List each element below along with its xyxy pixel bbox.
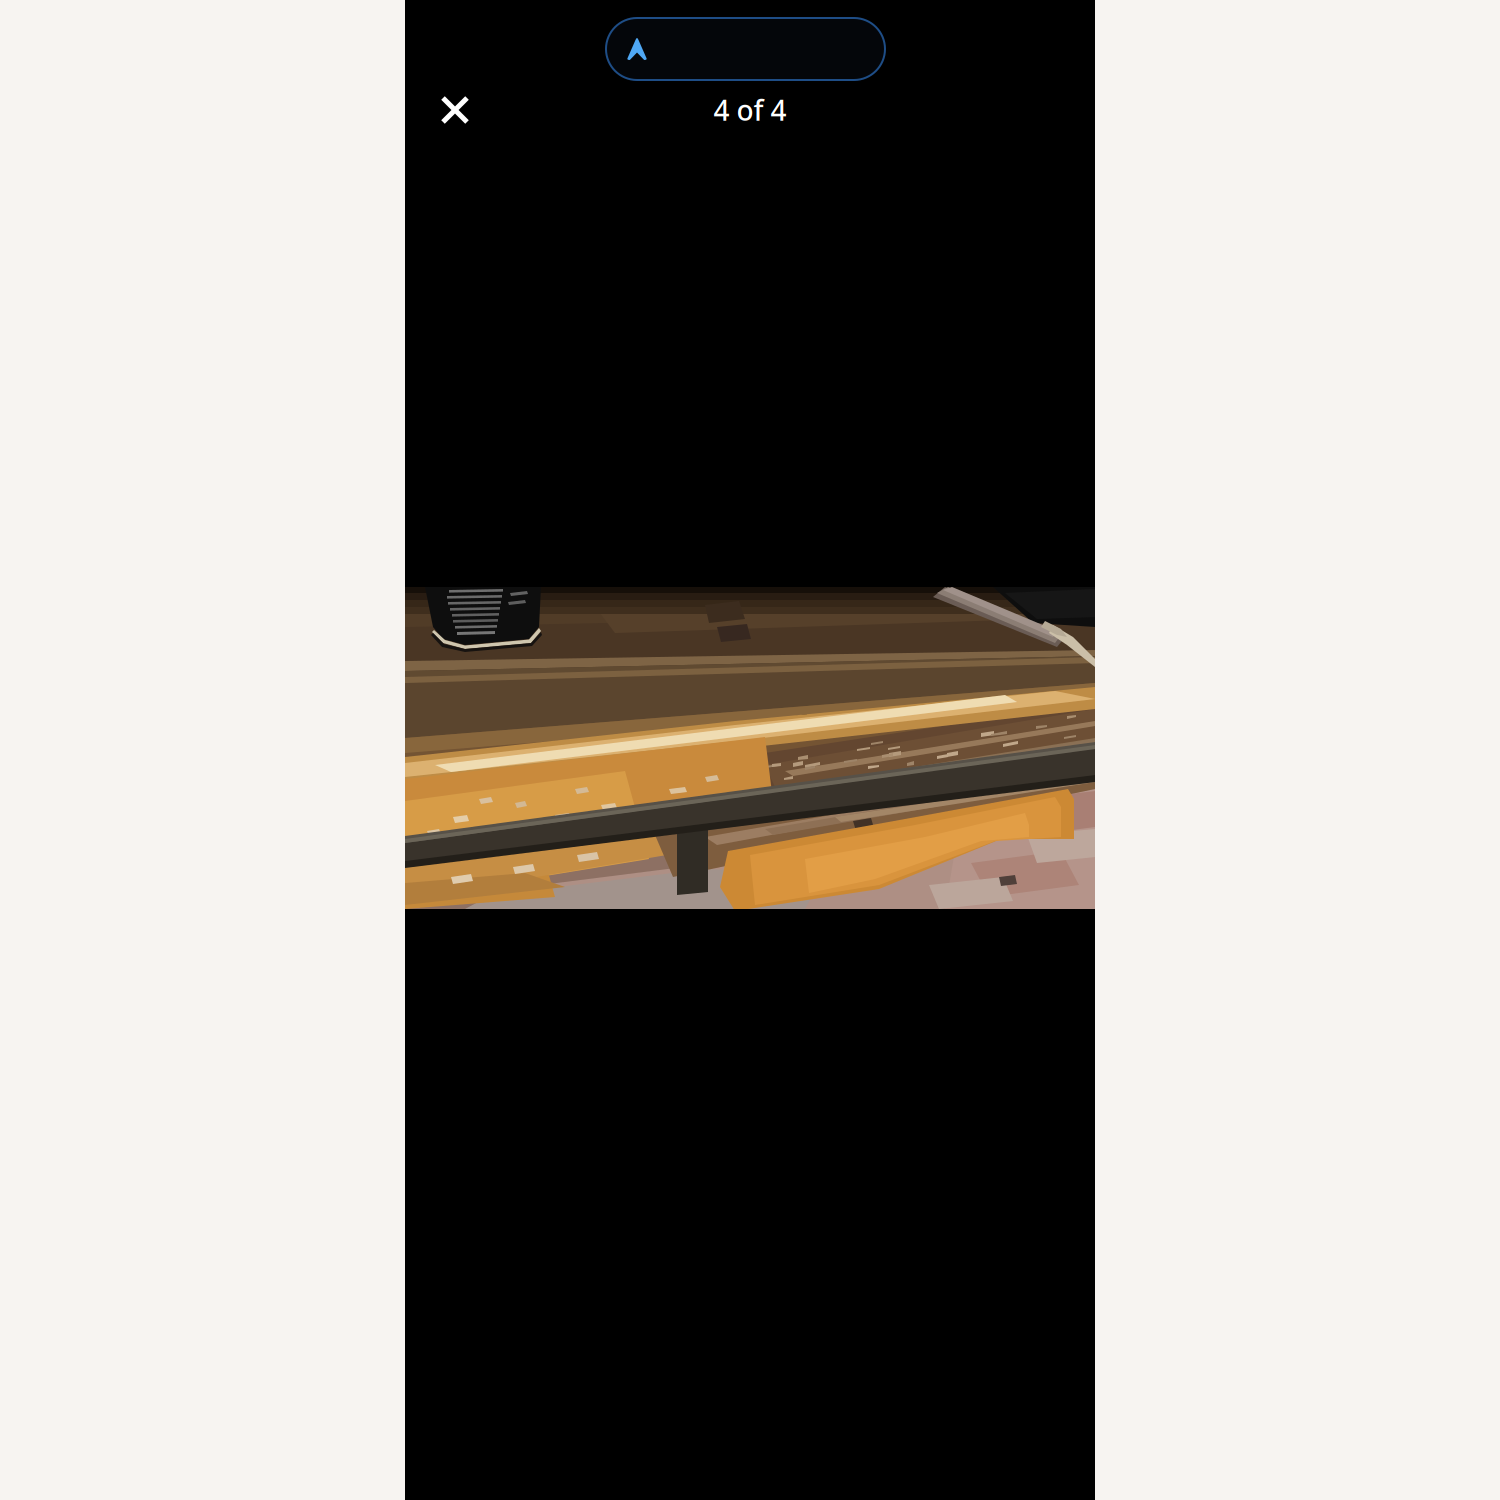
staticText: 4 of 4 <box>713 91 786 129</box>
button[interactable]: Close <box>431 86 479 134</box>
